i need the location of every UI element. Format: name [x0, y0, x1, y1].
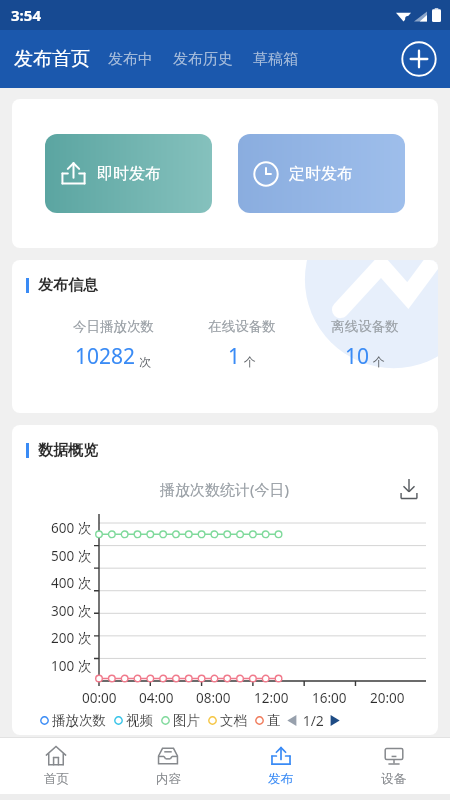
staticText: 离线设备数: [331, 318, 399, 335]
staticText: 发布历史: [173, 50, 233, 69]
staticText: 00:00: [82, 689, 117, 707]
staticText: 3:54: [11, 5, 41, 25]
button[interactable]: 文档: [208, 712, 247, 729]
staticText: 定时发布: [289, 164, 353, 184]
staticText: 即时发布: [97, 164, 161, 184]
staticText: 个: [244, 354, 256, 369]
staticText: 200 次: [51, 629, 92, 647]
button[interactable]: 播放次数: [40, 712, 106, 729]
staticText: 100 次: [51, 657, 92, 675]
staticText: 600 次: [51, 519, 92, 537]
staticText: 数据概览: [38, 441, 98, 460]
staticText: 400 次: [51, 574, 92, 592]
button[interactable]: 内容: [112, 738, 224, 794]
staticText: 播放次数: [52, 712, 106, 729]
staticText: 次: [139, 354, 151, 369]
staticText: 300 次: [51, 602, 92, 620]
button[interactable]: 图片: [161, 712, 200, 729]
button[interactable]: 下载: [398, 478, 420, 500]
button[interactable]: 下一页: [328, 714, 341, 727]
staticText: 发布: [268, 771, 293, 787]
staticText: 发布信息: [38, 276, 98, 295]
button[interactable]: 草稿箱: [248, 41, 303, 78]
button[interactable]: 直: [255, 712, 281, 729]
staticText: 10282: [75, 342, 136, 371]
staticText: 发布首页: [14, 47, 90, 71]
staticText: 文档: [220, 712, 247, 729]
staticText: 04:00: [139, 689, 174, 707]
button[interactable]: 首页: [0, 738, 112, 794]
button[interactable]: 上一页: [286, 714, 299, 727]
button[interactable]: 定时发布: [238, 134, 405, 213]
button[interactable]: 发布历史: [168, 41, 238, 78]
staticText: 个: [373, 354, 385, 369]
staticText: 设备: [381, 771, 406, 787]
staticText: 内容: [156, 771, 181, 787]
staticText: 图片: [173, 712, 200, 729]
staticText: 发布中: [108, 50, 153, 69]
staticText: 10: [345, 342, 370, 371]
staticText: 20:00: [370, 689, 405, 707]
staticText: 16:00: [312, 689, 347, 707]
button[interactable]: 即时发布: [45, 134, 212, 213]
button[interactable]: 发布: [224, 738, 337, 794]
staticText: 视频: [126, 712, 153, 729]
staticText: 在线设备数: [208, 318, 276, 335]
staticText: 08:00: [196, 689, 231, 707]
staticText: 500 次: [51, 547, 92, 565]
staticText: 1: [228, 342, 241, 371]
staticText: 直: [267, 712, 281, 729]
button[interactable]: 新建发布: [401, 41, 437, 77]
button[interactable]: 发布首页: [9, 40, 95, 78]
staticText: 首页: [44, 771, 69, 787]
staticText: 播放次数统计(今日): [160, 479, 290, 499]
button[interactable]: 设备: [337, 738, 450, 794]
staticText: 草稿箱: [253, 50, 298, 69]
staticText: 12:00: [254, 689, 289, 707]
button[interactable]: 发布中: [103, 41, 158, 78]
staticText: 1/2: [299, 711, 328, 730]
staticText: 今日播放次数: [73, 318, 154, 335]
button[interactable]: 视频: [114, 712, 153, 729]
